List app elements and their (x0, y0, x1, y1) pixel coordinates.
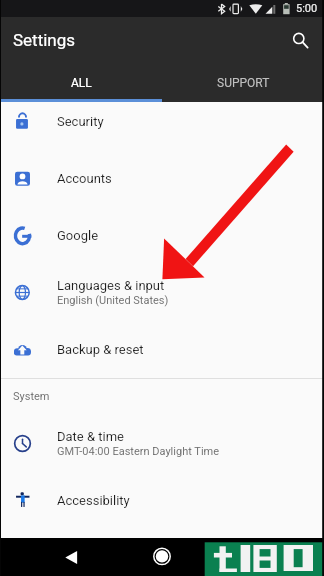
button[interactable]: Security (0, 93, 324, 150)
staticText: GMT-04:00 Eastern Daylight Time (57, 445, 220, 458)
button[interactable]: Accounts (0, 150, 324, 207)
button[interactable]: Google (0, 207, 324, 264)
staticText: Languages & input (57, 278, 165, 293)
button[interactable]: ALL (0, 67, 162, 99)
staticText: Date & time (57, 429, 124, 444)
staticText: Backup & reset (57, 342, 144, 357)
button[interactable]: Languages & input (0, 264, 324, 321)
staticText: 5:00 (296, 2, 318, 15)
staticText: Accounts (57, 171, 112, 186)
button[interactable]: SUPPORT (162, 67, 324, 99)
button[interactable]: Back (57, 545, 85, 573)
staticText: Accessibility (57, 493, 130, 508)
staticText: Settings (13, 30, 76, 50)
button[interactable]: Accessibility (0, 472, 324, 529)
staticText: Security (57, 114, 104, 129)
button[interactable]: Home (148, 542, 176, 570)
button[interactable]: Search (283, 23, 317, 57)
staticText: English (United States) (57, 294, 169, 307)
staticText: ALL (71, 76, 92, 90)
button[interactable]: Date & time (0, 415, 324, 472)
button[interactable]: Backup & reset (0, 321, 324, 378)
staticText: System (13, 390, 50, 403)
staticText: Google (57, 228, 99, 243)
staticText: SUPPORT (217, 76, 270, 90)
